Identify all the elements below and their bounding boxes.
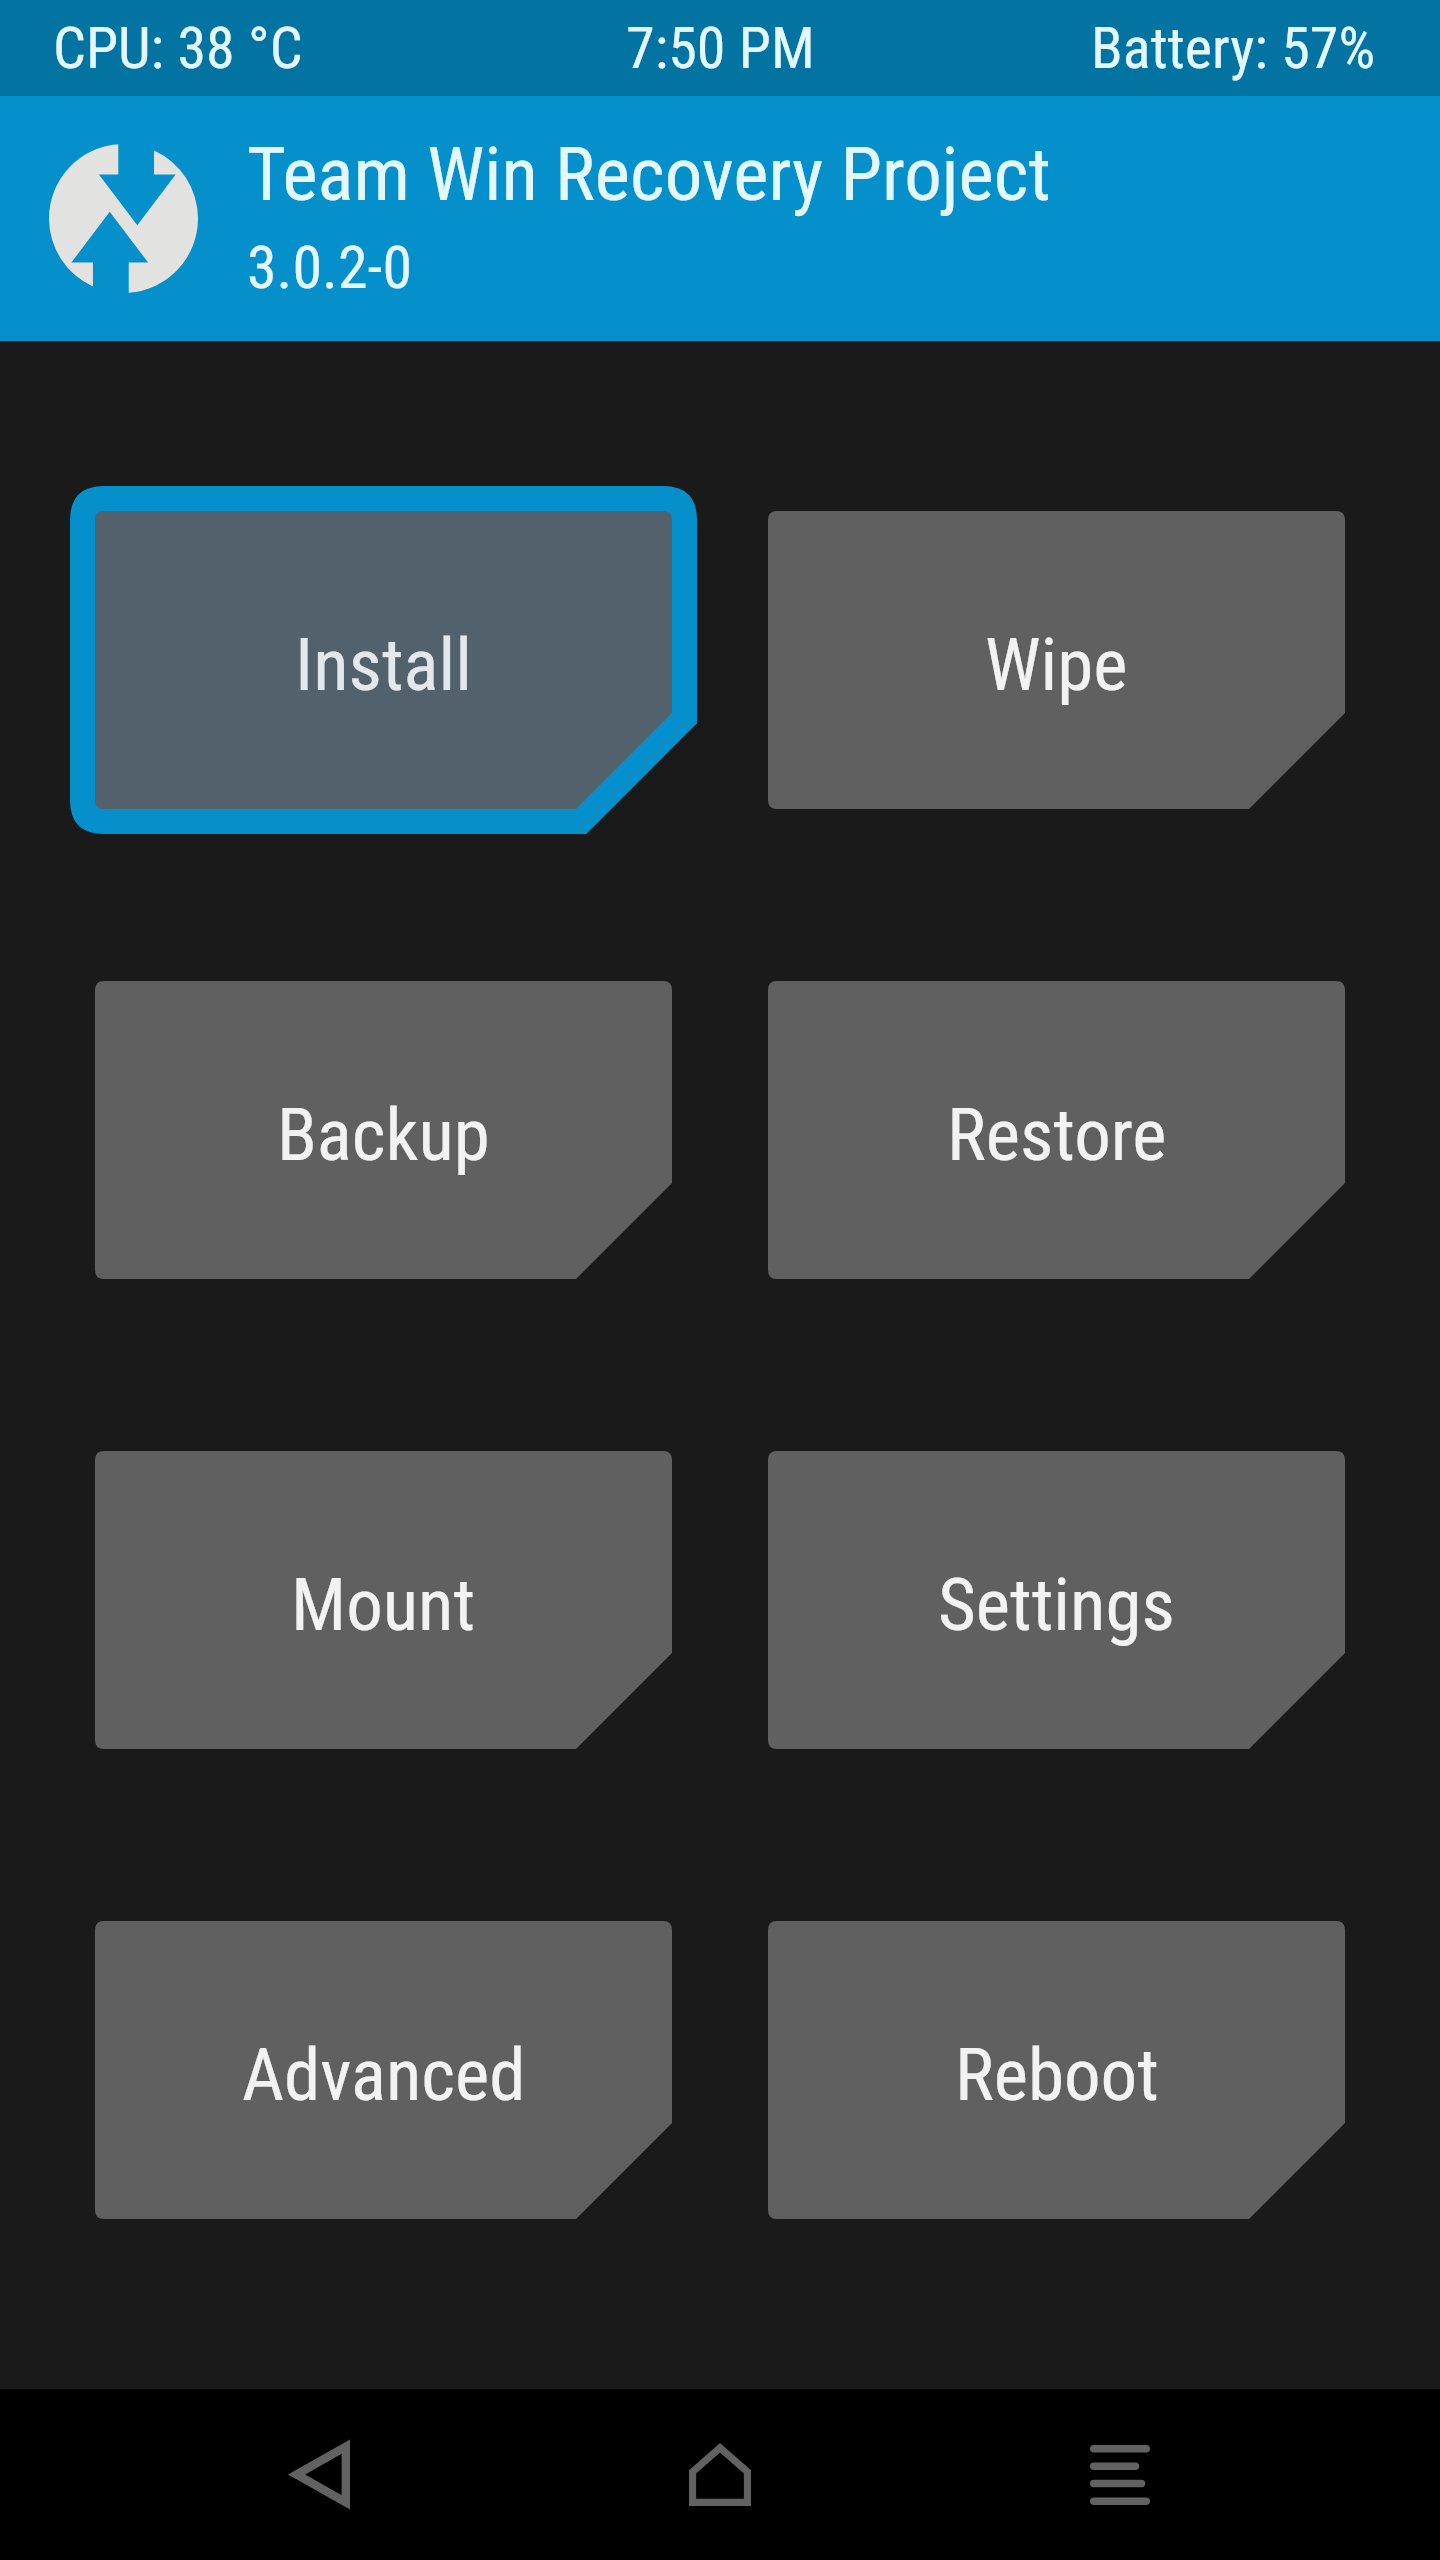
staticText: Wipe [985,622,1128,708]
button[interactable]: Mount [95,1451,672,1749]
staticText: 3.0.2-0 [247,232,412,302]
staticText: Backup [277,1092,490,1178]
button[interactable]: Settings [768,1451,1345,1749]
button[interactable]: Advanced [95,1921,672,2219]
staticText: Battery: 57% [1091,14,1376,82]
staticText: Install [295,622,472,708]
button[interactable]: Wipe [768,511,1345,809]
button[interactable]: Home [640,2389,800,2560]
staticText: CPU: 38 °C [53,14,303,82]
staticText: Mount [291,1562,476,1648]
button[interactable]: Install [95,511,672,809]
staticText: Reboot [955,2032,1159,2118]
button[interactable]: Reboot [768,1921,1345,2219]
button[interactable]: Recent apps [1040,2389,1200,2560]
staticText: Restore [947,1092,1167,1178]
button[interactable]: Backup [95,981,672,1279]
staticText: Team Win Recovery Project [247,130,1051,218]
button[interactable]: Back [240,2389,400,2560]
staticText: Advanced [242,2032,526,2118]
staticText: Settings [938,1562,1175,1648]
staticText: 7:50 PM [626,14,815,82]
button[interactable]: Restore [768,981,1345,1279]
